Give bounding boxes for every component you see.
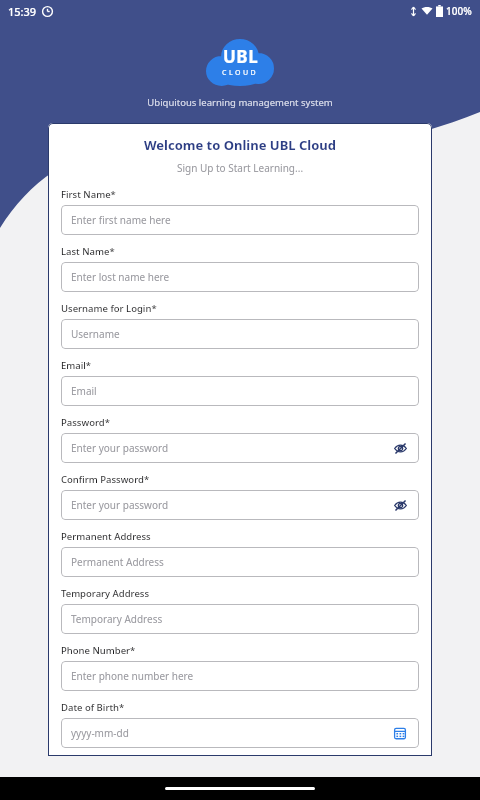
button[interactable]: Enter your password: [61, 490, 419, 520]
staticText: Permanent Address: [71, 555, 409, 569]
staticText: Phone Number*: [61, 644, 136, 657]
staticText: CLOUD: [222, 68, 259, 78]
button[interactable]: Temporary Address: [61, 604, 419, 634]
button[interactable]: Toggle password visibility: [391, 496, 409, 514]
button[interactable]: yyyy-mm-dd: [61, 718, 419, 748]
staticText: Enter first name here: [71, 213, 409, 227]
staticText: 15:39: [8, 4, 37, 19]
button[interactable]: Enter your password: [61, 433, 419, 463]
staticText: Email*: [61, 359, 92, 372]
staticText: UBL: [223, 45, 259, 68]
staticText: First Name*: [61, 188, 116, 201]
staticText: Username: [71, 327, 409, 341]
staticText: Confirm Password*: [61, 473, 150, 486]
staticText: Temporary Address: [61, 587, 150, 600]
staticText: Welcome to Online UBL Cloud: [61, 136, 419, 154]
staticText: yyyy-mm-dd: [71, 726, 391, 740]
staticText: Sign Up to Start Learning...: [61, 161, 419, 175]
staticText: Ubiquitous learning management system: [0, 96, 480, 109]
staticText: Enter phone number here: [71, 669, 409, 683]
staticText: Email: [71, 384, 409, 398]
button[interactable]: Username: [61, 319, 419, 349]
staticText: Temporary Address: [71, 612, 409, 626]
button[interactable]: Pick date: [391, 724, 409, 742]
staticText: Enter your password: [71, 498, 391, 512]
button[interactable]: Enter phone number here: [61, 661, 419, 691]
staticText: Last Name*: [61, 245, 115, 258]
staticText: Password*: [61, 416, 110, 429]
staticText: 100%: [446, 4, 472, 18]
staticText: Permanent Address: [61, 530, 151, 543]
button[interactable]: Enter first name here: [61, 205, 419, 235]
button[interactable]: Toggle password visibility: [391, 439, 409, 457]
button[interactable]: Permanent Address: [61, 547, 419, 577]
staticText: Enter lost name here: [71, 270, 409, 284]
staticText: Enter your password: [71, 441, 391, 455]
staticText: Username for Login*: [61, 302, 157, 315]
staticText: Date of Birth*: [61, 701, 125, 714]
button[interactable]: Enter lost name here: [61, 262, 419, 292]
button[interactable]: Email: [61, 376, 419, 406]
